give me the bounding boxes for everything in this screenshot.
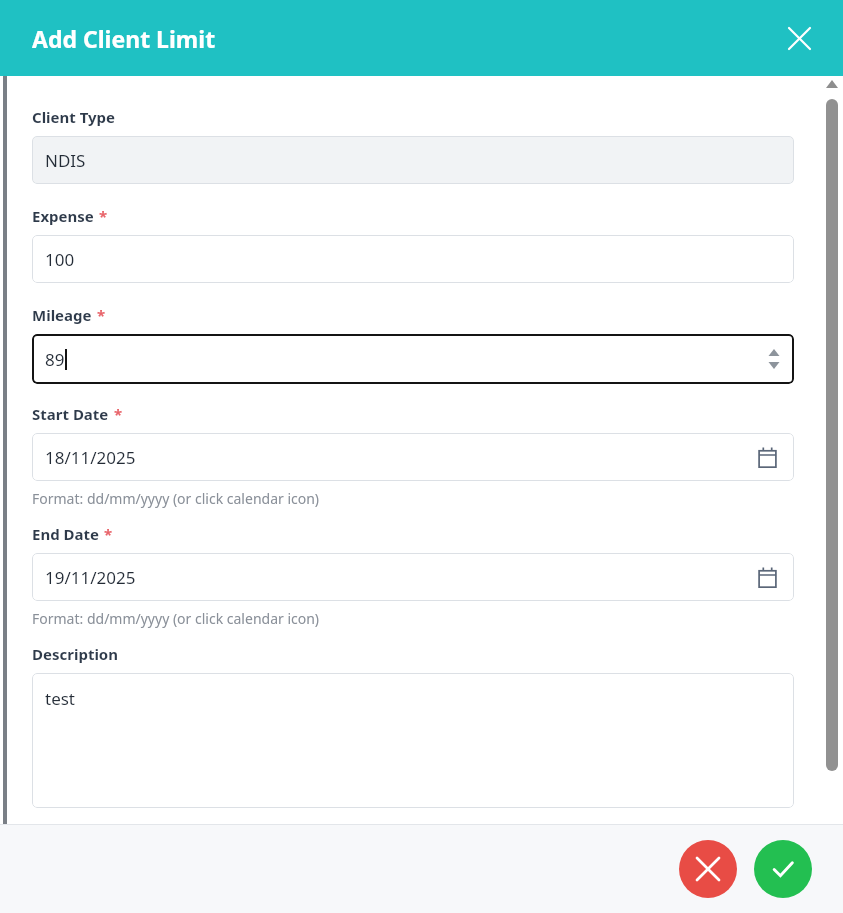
button[interactable] [826,99,838,771]
staticText: End Date [32,524,99,544]
staticText: Mileage [32,305,92,325]
button[interactable]: Open start date calendar [753,443,781,471]
staticText: * [97,305,106,325]
staticText: Format: dd/mm/yyyy (or click calendar ic… [32,489,320,508]
staticText: Start Date [32,404,109,424]
button[interactable]: Cancel [679,840,737,898]
staticText: 18/11/2025 [45,446,136,469]
staticText: Add Client Limit [32,23,216,54]
staticText: 89 [45,348,65,371]
staticText: Format: dd/mm/yyyy (or click calendar ic… [32,609,320,628]
staticText: * [99,206,108,226]
button[interactable]: 89 [32,334,794,384]
staticText: * [104,524,113,544]
staticText: Description [32,644,118,664]
staticText: NDIS [45,149,86,172]
button[interactable]: test [32,673,794,808]
staticText: Client Type [32,107,116,127]
staticText: Expense [32,206,94,226]
staticText: 19/11/2025 [45,566,136,589]
staticText: test [45,687,76,710]
button[interactable]: NDIS [32,136,794,184]
staticText: 100 [45,248,75,271]
button[interactable]: 100 [32,235,794,283]
staticText: * [114,404,123,424]
button[interactable]: Close [779,18,819,58]
button[interactable]: Open end date calendar [753,563,781,591]
button[interactable]: 19/11/2025 [32,553,794,601]
button[interactable]: 18/11/2025 [32,433,794,481]
button[interactable]: Save [754,840,812,898]
